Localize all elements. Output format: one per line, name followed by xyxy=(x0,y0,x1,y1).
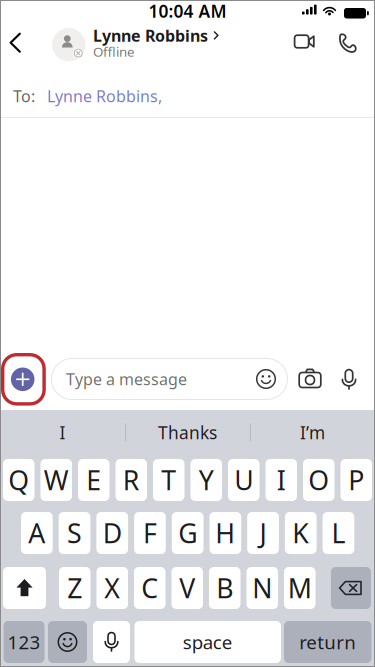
button[interactable]: I’m xyxy=(250,410,375,455)
staticText: To: xyxy=(13,85,35,107)
staticText: Q xyxy=(8,462,29,498)
button[interactable]: M xyxy=(284,567,315,609)
staticText: Y xyxy=(199,462,214,498)
staticText: W xyxy=(44,462,69,498)
button[interactable]: V xyxy=(171,567,203,609)
staticText: 123 xyxy=(7,630,40,654)
button[interactable]: L xyxy=(323,512,354,554)
staticText: Offline xyxy=(93,43,135,60)
button[interactable]: 123 xyxy=(3,621,44,663)
button[interactable]: C xyxy=(134,567,165,609)
staticText: G xyxy=(178,515,197,551)
staticText: space xyxy=(183,630,233,654)
button[interactable]: space xyxy=(134,621,281,663)
staticText: S xyxy=(67,515,82,551)
button[interactable]: G xyxy=(172,512,203,554)
button[interactable]: Q xyxy=(3,459,34,501)
staticText: X xyxy=(104,570,120,606)
staticText: K xyxy=(292,515,309,551)
button[interactable]: Emoji keyboard xyxy=(48,621,87,663)
button[interactable]: I xyxy=(0,410,125,455)
button[interactable]: Z xyxy=(59,567,90,609)
button[interactable]: E xyxy=(78,459,109,501)
button[interactable]: X xyxy=(96,567,128,609)
button[interactable]: Shift xyxy=(3,567,46,609)
button[interactable]: F xyxy=(134,512,166,554)
button[interactable]: R xyxy=(115,459,147,501)
staticText: B xyxy=(216,570,233,606)
staticText: H xyxy=(215,515,235,551)
staticText: P xyxy=(348,462,364,498)
button[interactable]: Thanks xyxy=(125,410,250,455)
button[interactable]: D xyxy=(96,512,128,554)
staticText: I’m xyxy=(300,421,325,444)
staticText: C xyxy=(141,570,158,606)
button[interactable]: P xyxy=(340,459,372,501)
button[interactable]: Dictation xyxy=(93,621,130,663)
staticText: J xyxy=(260,515,267,551)
staticText: U xyxy=(234,462,253,498)
staticText: O xyxy=(308,462,329,498)
staticText: M xyxy=(288,570,312,606)
button[interactable]: return xyxy=(284,621,371,663)
button[interactable]: T xyxy=(153,459,184,501)
button[interactable]: J xyxy=(247,512,279,554)
button[interactable]: U xyxy=(228,459,259,501)
button[interactable]: Lynne Robbins, xyxy=(47,85,162,107)
staticText: A xyxy=(28,515,45,551)
button[interactable]: W xyxy=(40,459,72,501)
staticText: 10:04 AM xyxy=(148,0,226,22)
staticText: L xyxy=(331,515,345,551)
button[interactable]: K xyxy=(285,512,317,554)
button[interactable]: Delete xyxy=(331,567,371,609)
button[interactable]: Video call xyxy=(285,22,329,74)
staticText: R xyxy=(123,462,140,498)
staticText: I xyxy=(277,462,286,498)
staticText: Z xyxy=(67,570,82,606)
staticText: Thanks xyxy=(158,421,217,444)
staticText: F xyxy=(143,515,157,551)
button[interactable]: N xyxy=(246,567,278,609)
staticText: Type a message xyxy=(66,368,187,390)
staticText: Lynne Robbins, xyxy=(47,85,162,107)
button[interactable]: Y xyxy=(190,459,222,501)
button[interactable]: O xyxy=(303,459,334,501)
button[interactable]: S xyxy=(59,512,90,554)
button[interactable]: B xyxy=(209,567,240,609)
staticText: N xyxy=(252,570,272,606)
button[interactable]: Lynne Robbins xyxy=(55,22,230,74)
staticText: E xyxy=(86,462,101,498)
staticText: D xyxy=(103,515,122,551)
staticText: Lynne Robbins xyxy=(93,25,208,46)
button[interactable]: Add attachment xyxy=(1,352,49,408)
button[interactable]: Type a message xyxy=(51,358,288,400)
button[interactable]: I xyxy=(265,459,297,501)
button[interactable]: Audio call xyxy=(326,22,370,74)
button[interactable]: A xyxy=(21,512,53,554)
button[interactable]: H xyxy=(209,512,241,554)
button[interactable]: Voice message xyxy=(340,368,358,390)
staticText: return xyxy=(299,630,356,654)
staticText: I xyxy=(59,421,65,444)
button[interactable]: Camera xyxy=(298,367,322,391)
button[interactable]: Back xyxy=(0,22,36,74)
staticText: V xyxy=(179,570,195,606)
staticText: T xyxy=(161,462,176,498)
button[interactable]: Emoji xyxy=(255,368,277,390)
